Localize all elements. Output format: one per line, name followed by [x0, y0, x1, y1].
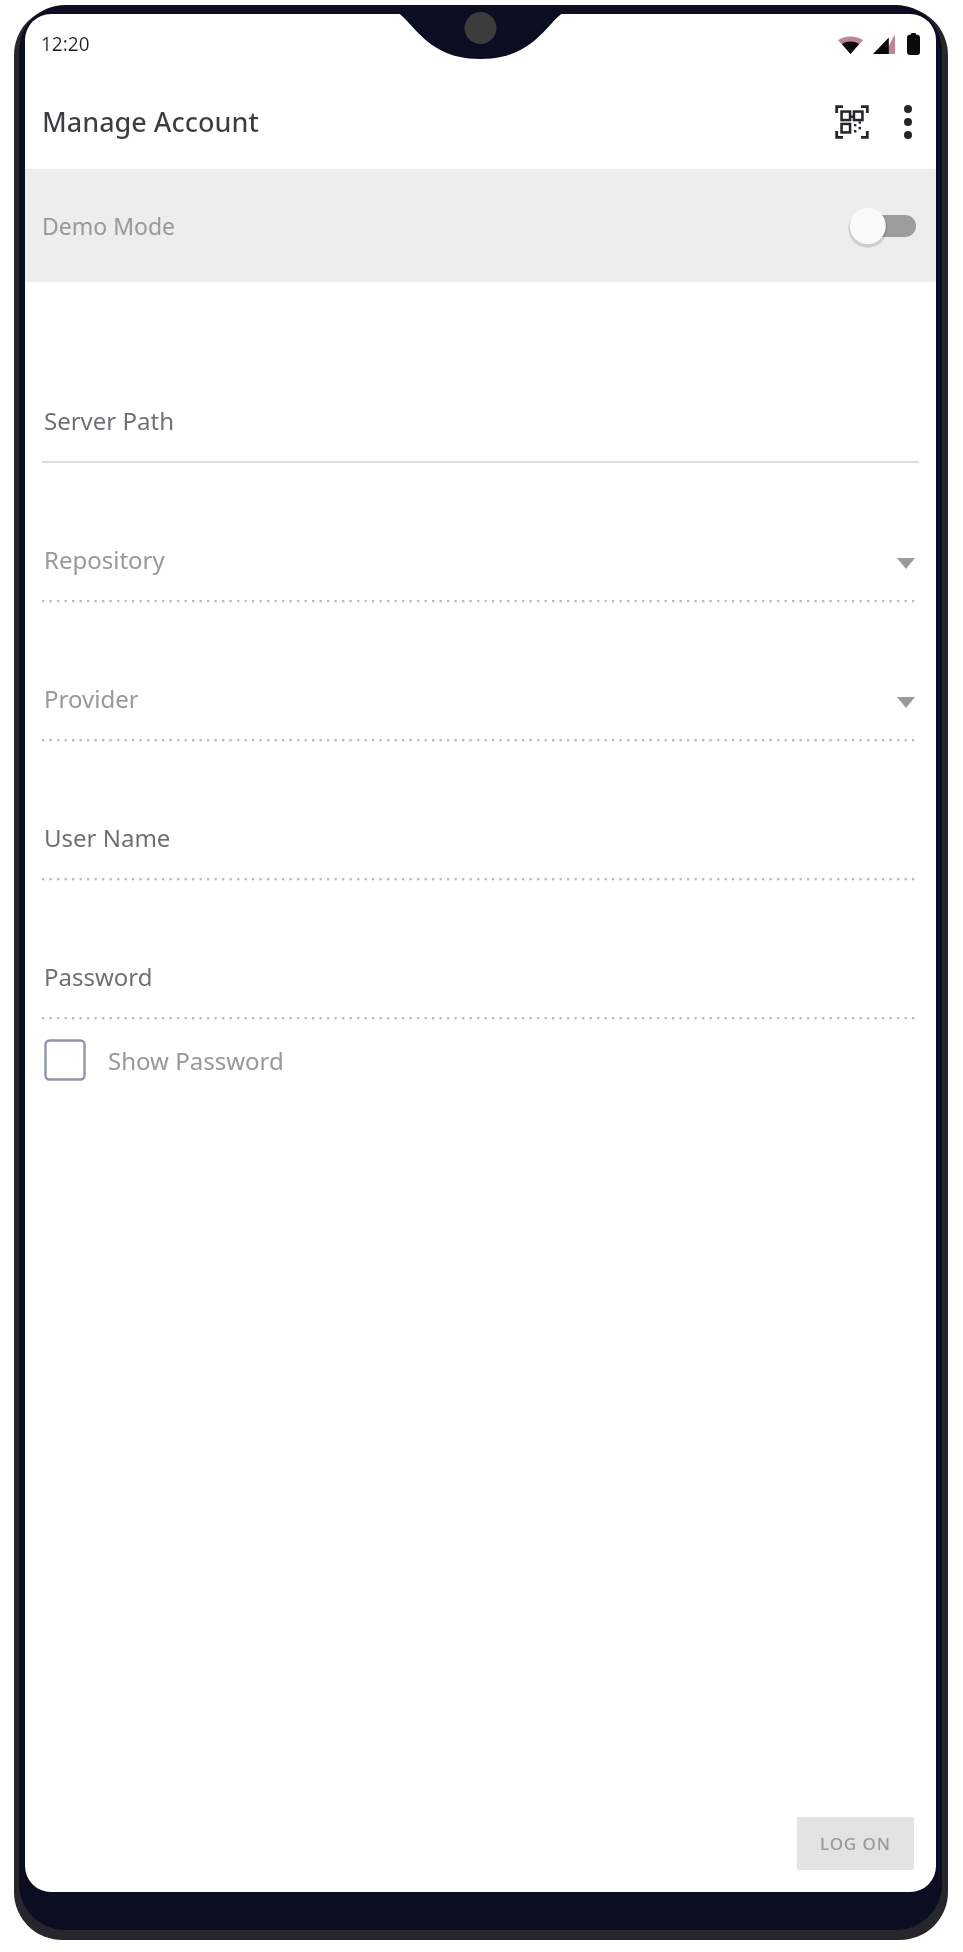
button[interactable]: Server Path	[42, 326, 919, 465]
button[interactable]: Repository	[42, 465, 919, 604]
staticText: Password	[44, 960, 153, 993]
button[interactable]: Show Password	[42, 1031, 284, 1089]
staticText: Demo Mode	[42, 210, 176, 241]
button[interactable]: User Name	[42, 743, 919, 882]
button[interactable]: Provider	[42, 604, 919, 743]
staticText: 12:20	[41, 31, 90, 57]
staticText: LOG ON	[820, 1832, 891, 1855]
staticText: Manage Account	[42, 103, 259, 140]
button[interactable]: More options	[880, 94, 936, 150]
button[interactable]: Scan QR code	[824, 94, 880, 150]
staticText: Provider	[44, 682, 139, 715]
button[interactable]: Demo Mode	[25, 169, 936, 282]
staticText: Server Path	[44, 404, 174, 437]
button[interactable]: Password	[42, 882, 919, 1021]
staticText: Repository	[44, 543, 165, 576]
staticText: Show Password	[108, 1044, 284, 1077]
staticText: User Name	[44, 821, 171, 854]
button[interactable]: LOG ON	[797, 1817, 914, 1870]
